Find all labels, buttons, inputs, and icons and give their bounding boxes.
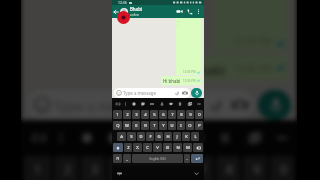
button[interactable]: K: [182, 132, 190, 141]
button[interactable]: Keyboard tool 1: [81, 132, 93, 144]
button[interactable]: J: [173, 132, 181, 141]
button[interactable]: M: [183, 143, 192, 152]
button[interactable]: [120, 8, 128, 16]
button[interactable]: Enter: [191, 154, 203, 163]
button[interactable]: A: [117, 132, 126, 141]
button[interactable]: 8: [216, 156, 240, 180]
button[interactable]: .: [184, 154, 190, 163]
button[interactable]: 6: [162, 156, 186, 180]
button[interactable]: Keyboard tool 0: [33, 132, 45, 144]
staticText: 3: [135, 112, 138, 118]
button[interactable]: I: [177, 121, 185, 130]
staticText: 2: [63, 162, 72, 180]
button[interactable]: N: [173, 143, 182, 152]
button[interactable]: Attach: [207, 96, 225, 114]
button[interactable]: W: [123, 121, 131, 130]
button[interactable]: Keyboard tool 6: [219, 132, 231, 144]
button[interactable]: Type a message: [116, 88, 188, 98]
button[interactable]: D: [137, 132, 145, 141]
button[interactable]: Backspace: [193, 143, 203, 152]
staticText: T: [153, 123, 156, 129]
button[interactable]: S: [127, 132, 136, 141]
button[interactable]: Keyboard tool 5: [169, 102, 173, 106]
button[interactable]: Record voice message: [258, 90, 291, 120]
button[interactable]: ,: [123, 154, 131, 163]
button[interactable]: Camera: [182, 90, 188, 96]
button[interactable]: B: [163, 143, 172, 152]
button[interactable]: Voice call: [186, 8, 193, 15]
button[interactable]: Y: [159, 121, 167, 130]
button[interactable]: V: [153, 143, 162, 152]
button[interactable]: R: [141, 121, 149, 130]
button[interactable]: 9: [186, 110, 194, 119]
button[interactable]: Keyboard tool 3: [150, 102, 154, 106]
staticText: K: [185, 134, 188, 140]
staticText: Q: [116, 123, 120, 129]
button[interactable]: Q: [113, 121, 122, 130]
button[interactable]: Camera: [231, 96, 249, 114]
button[interactable]: 4: [141, 110, 149, 119]
staticText: 6: [162, 112, 165, 118]
button[interactable]: Keyboard tool 2: [141, 102, 145, 106]
button[interactable]: 5: [150, 110, 158, 119]
button[interactable]: Hide keyboard: [117, 171, 122, 176]
button[interactable]: Hi bhabi: [168, 54, 288, 81]
button[interactable]: Keyboard tool 4: [160, 102, 164, 106]
button[interactable]: Hi bhabi: [161, 76, 201, 85]
button[interactable]: Back: [113, 9, 119, 15]
button[interactable]: U: [168, 121, 176, 130]
button[interactable]: 2: [123, 110, 131, 119]
button[interactable]: T: [150, 121, 158, 130]
button[interactable]: 3: [132, 110, 140, 119]
button[interactable]: 4: [108, 156, 132, 180]
button[interactable]: L: [191, 132, 199, 141]
button[interactable]: Z: [124, 143, 132, 152]
button[interactable]: Keyboard tool 8: [197, 102, 201, 106]
button[interactable]: ...: [176, 18, 201, 75]
button[interactable]: 7: [189, 156, 213, 180]
button[interactable]: C: [143, 143, 152, 152]
button[interactable]: 8: [177, 110, 185, 119]
button[interactable]: Keyboard tool 7: [249, 132, 261, 144]
button[interactable]: Video call: [176, 8, 183, 15]
button[interactable]: Type a message: [33, 90, 249, 120]
staticText: J: [176, 134, 178, 140]
button[interactable]: 0: [195, 110, 203, 119]
button[interactable]: F: [146, 132, 154, 141]
staticText: I: [180, 123, 182, 129]
button[interactable]: 7: [168, 110, 176, 119]
button[interactable]: Keyboard tool 2: [108, 132, 120, 144]
button[interactable]: Keyboard tool 4: [165, 132, 177, 144]
button[interactable]: Keyboard tool 8: [276, 132, 288, 144]
button[interactable]: Keyboard tool 5: [192, 132, 204, 144]
button[interactable]: 2: [54, 156, 78, 180]
button[interactable]: English (US): [132, 154, 183, 163]
button[interactable]: Back: [194, 171, 199, 176]
button[interactable]: O: [186, 121, 194, 130]
button[interactable]: X: [133, 143, 142, 152]
button[interactable]: Record voice message: [191, 88, 202, 98]
button[interactable]: More options: [197, 8, 200, 15]
button[interactable]: Keyboard tool 6: [178, 102, 182, 106]
button[interactable]: H: [164, 132, 172, 141]
button[interactable]: Keyboard tool 0: [116, 102, 120, 106]
button[interactable]: 5: [135, 156, 159, 180]
button[interactable]: 6: [159, 110, 167, 119]
button[interactable]: E: [132, 121, 140, 130]
staticText: M: [186, 145, 190, 151]
button[interactable]: Keyboard tool 3: [135, 132, 147, 144]
button[interactable]: P: [195, 121, 203, 130]
button[interactable]: Keyboard tool 1: [132, 102, 136, 106]
button[interactable]: 1: [24, 156, 51, 180]
button[interactable]: 1: [113, 110, 122, 119]
button[interactable]: ?1: [113, 154, 122, 163]
button[interactable]: 0: [270, 156, 294, 180]
button[interactable]: Shift: [113, 143, 123, 152]
button[interactable]: Attach: [174, 90, 180, 96]
button[interactable]: G: [155, 132, 163, 141]
staticText: O: [188, 123, 192, 129]
button[interactable]: Keyboard tool 7: [188, 102, 192, 106]
button[interactable]: 9: [243, 156, 267, 180]
button[interactable]: 3: [81, 156, 105, 180]
